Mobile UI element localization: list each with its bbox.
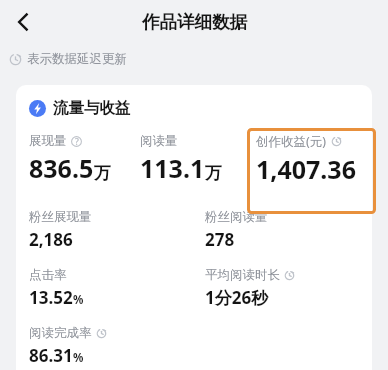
staticText: 点击率 — [29, 267, 67, 283]
button[interactable]: 点击率 — [29, 267, 84, 309]
button[interactable]: 粉丝阅读量 — [205, 209, 268, 251]
staticText: 13.52 — [29, 286, 73, 309]
staticText: 万 — [94, 163, 111, 184]
button[interactable]: 创作收益(元) — [256, 133, 356, 186]
staticText: 86.31 — [29, 344, 73, 367]
staticText: 粉丝展现量 — [29, 209, 92, 225]
staticText: 展现量 — [29, 133, 67, 149]
staticText: ? — [75, 136, 79, 147]
staticText: 流量与收益 — [53, 98, 131, 118]
staticText: 1,407.36 — [256, 152, 356, 186]
staticText: 作品详细数据 — [142, 11, 247, 33]
staticText: % — [73, 350, 84, 366]
staticText: 阅读量 — [140, 133, 178, 149]
staticText: % — [73, 292, 84, 308]
button[interactable]: 阅读完成率 — [29, 325, 107, 367]
staticText: 阅读完成率 — [29, 325, 92, 341]
staticText: 创作收益(元) — [256, 133, 327, 150]
staticText: 836.5 — [29, 151, 94, 185]
staticText: 表示数据延迟更新 — [27, 51, 127, 67]
staticText: 2,186 — [29, 228, 73, 251]
staticText: 113.1 — [140, 151, 205, 185]
staticText: 万 — [205, 163, 222, 184]
button[interactable]: Back — [4, 2, 44, 42]
button[interactable]: 平均阅读时长 — [205, 267, 295, 309]
staticText: 粉丝阅读量 — [205, 209, 268, 225]
staticText: 1分26秒 — [205, 286, 269, 309]
staticText: 平均阅读时长 — [205, 267, 280, 283]
button[interactable]: 粉丝展现量 — [29, 209, 92, 251]
staticText: 278 — [205, 228, 235, 251]
button[interactable]: 展现量 — [29, 133, 111, 185]
button[interactable]: 阅读量 — [140, 133, 222, 185]
